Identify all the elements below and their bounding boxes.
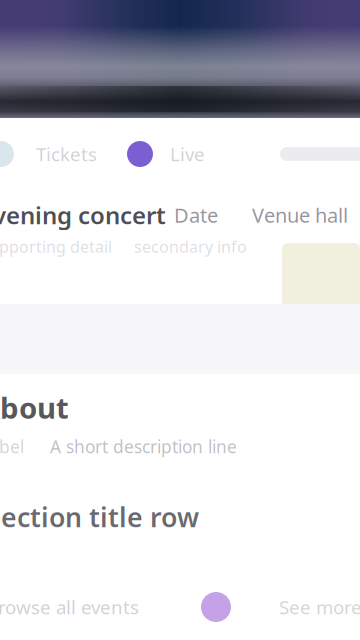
button[interactable]: See more: [279, 595, 360, 619]
staticText: Label: [0, 435, 24, 458]
staticText: Supporting detail: [0, 236, 112, 257]
staticText: Venue hall: [252, 202, 348, 228]
staticText: Live: [170, 142, 205, 166]
staticText: Browse all events: [0, 595, 139, 619]
staticText: See more: [279, 595, 360, 619]
staticText: About: [0, 388, 69, 427]
button[interactable]: Live: [127, 141, 205, 167]
staticText: Tickets: [36, 142, 97, 166]
staticText: Date: [174, 202, 218, 228]
button[interactable]: Add: [201, 592, 231, 622]
staticText: secondary info: [134, 236, 247, 257]
button[interactable]: Tickets: [0, 141, 97, 167]
staticText: Section title row: [0, 499, 199, 535]
staticText: A short description line: [50, 435, 237, 458]
staticText: Evening concert: [0, 199, 166, 231]
button[interactable]: Browse all events: [0, 595, 139, 619]
